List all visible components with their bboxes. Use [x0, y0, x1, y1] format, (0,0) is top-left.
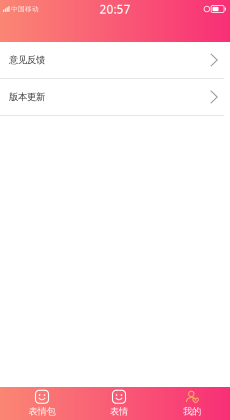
staticText: 表情	[110, 406, 128, 417]
button[interactable]: 表情	[84, 387, 154, 420]
staticText: 意见反馈	[9, 54, 45, 66]
staticText: 版本更新	[9, 91, 45, 103]
button[interactable]: 版本更新	[0, 79, 230, 115]
button[interactable]: 我的	[154, 387, 230, 420]
staticText: 表情包	[28, 406, 55, 417]
button[interactable]: 表情包	[0, 387, 84, 420]
staticText: 中国移动	[11, 5, 39, 13]
staticText: 20:57	[99, 1, 130, 17]
button[interactable]: 意见反馈	[0, 42, 230, 78]
staticText: 我的	[183, 406, 201, 417]
